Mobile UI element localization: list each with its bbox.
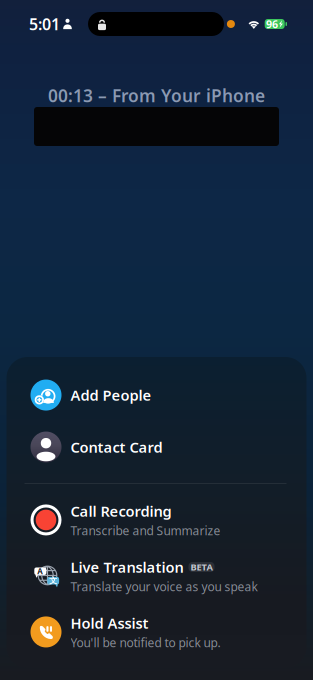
staticText: Call Recording bbox=[70, 501, 171, 521]
button[interactable]: Hold Assist bbox=[6, 604, 306, 660]
staticText: 96 bbox=[266, 17, 278, 31]
staticText: You'll be notified to pick up. bbox=[70, 635, 220, 651]
staticText: Hold Assist bbox=[70, 613, 148, 633]
button[interactable]: Add People bbox=[6, 369, 306, 421]
staticText: BETA bbox=[190, 561, 212, 573]
staticText: Transcribe and Summarize bbox=[70, 523, 220, 539]
staticText: 5:01 bbox=[29, 13, 60, 35]
staticText: Live Translation bbox=[70, 557, 183, 577]
button[interactable]: A bbox=[6, 548, 306, 604]
staticText: Add People bbox=[70, 385, 151, 405]
button[interactable]: Call Recording bbox=[6, 492, 306, 548]
staticText: 00:13 – From Your iPhone bbox=[48, 84, 265, 107]
staticText: Contact Card bbox=[70, 437, 162, 457]
staticText: 文 bbox=[49, 576, 57, 585]
staticText: Translate your voice as you speak bbox=[70, 579, 257, 595]
button[interactable]: Contact Card bbox=[6, 421, 306, 473]
staticText: A bbox=[37, 566, 43, 576]
